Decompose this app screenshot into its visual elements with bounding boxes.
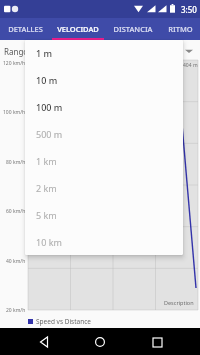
button[interactable]: 10 m: [25, 66, 183, 93]
button[interactable]: 100 m: [25, 93, 183, 120]
staticText: Description: [164, 299, 194, 306]
staticText: 404 m: [183, 62, 198, 69]
staticText: 10 km: [36, 236, 62, 248]
button: 1 km: [25, 147, 183, 174]
staticText: 2 km: [36, 182, 57, 194]
button: 2 km: [25, 174, 183, 201]
button[interactable]: Home: [87, 329, 113, 355]
staticText: RITMO: [168, 24, 193, 34]
staticText: 20 km/h: [6, 307, 26, 314]
button[interactable]: VELOCIDAD: [50, 18, 105, 40]
staticText: 40 km/h: [6, 258, 26, 265]
button[interactable]: DISTANCIA: [105, 18, 160, 40]
staticText: 60 km/h: [6, 208, 26, 215]
button: 5 km: [25, 201, 183, 228]
button[interactable]: RITMO: [160, 18, 200, 40]
staticText: 100 m: [36, 101, 63, 113]
button[interactable]: Expand range: [182, 44, 196, 58]
button[interactable]: DETALLES: [0, 18, 50, 40]
button: 500 m: [25, 120, 183, 147]
staticText: Speed vs Distance: [36, 317, 92, 326]
staticText: DETALLES: [8, 24, 43, 34]
staticText: 120 km/h: [3, 60, 26, 67]
button[interactable]: 1 m: [25, 40, 183, 66]
staticText: 100 km/h: [3, 109, 26, 116]
button[interactable]: Back: [31, 329, 57, 355]
staticText: 500 m: [36, 128, 63, 140]
staticText: 5 km: [36, 209, 57, 221]
button[interactable]: Recent apps: [144, 329, 170, 355]
staticText: VELOCIDAD: [57, 24, 99, 34]
button: 10 km: [25, 228, 183, 255]
staticText: DISTANCIA: [113, 24, 153, 34]
staticText: 1 m: [36, 47, 53, 59]
staticText: 3:50: [181, 4, 197, 15]
staticText: Rango: [4, 46, 29, 57]
staticText: 10 m: [36, 74, 58, 86]
staticText: 1 km: [36, 155, 57, 167]
staticText: 80 km/h: [6, 159, 26, 166]
